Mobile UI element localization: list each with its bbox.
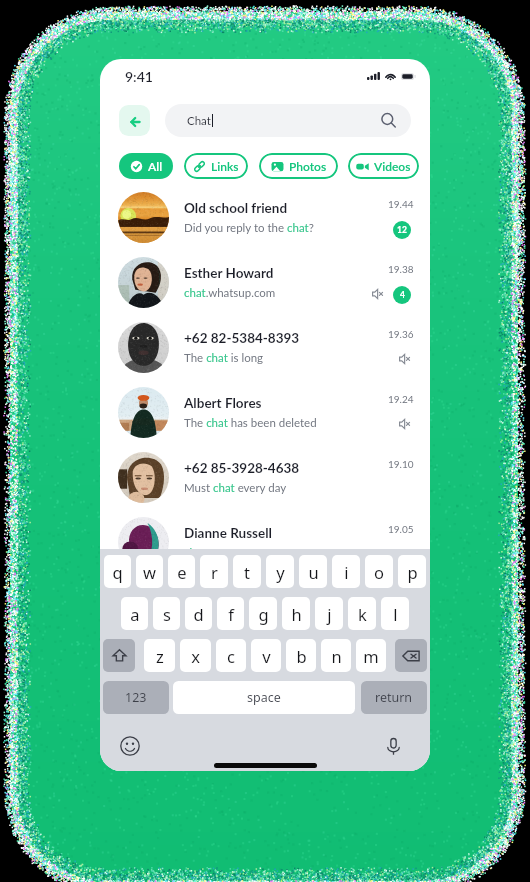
staticText: +62 85-3928-4638 bbox=[184, 460, 300, 476]
button[interactable]: Old school friend bbox=[100, 192, 430, 257]
staticText: r bbox=[211, 561, 218, 583]
staticText: o bbox=[374, 561, 384, 583]
staticText: Must chat every day bbox=[184, 481, 287, 495]
staticText: Photos bbox=[289, 159, 327, 173]
staticText: s bbox=[163, 603, 171, 625]
button[interactable]: x bbox=[180, 639, 211, 672]
button[interactable]: i bbox=[332, 555, 360, 588]
staticText: 123 bbox=[125, 689, 147, 706]
button[interactable]: Backspace bbox=[395, 639, 427, 672]
staticText: w bbox=[143, 561, 156, 583]
staticText: l bbox=[393, 603, 398, 625]
button[interactable]: Links bbox=[184, 153, 248, 179]
staticText: 19.38 bbox=[388, 263, 414, 275]
button[interactable]: q bbox=[104, 555, 131, 588]
staticText: m bbox=[363, 645, 379, 667]
other: Search bbox=[381, 113, 396, 128]
staticText: y bbox=[276, 561, 285, 583]
staticText: The chat has been deleted bbox=[184, 416, 317, 430]
staticText: e bbox=[177, 561, 187, 583]
staticText: Old school friend bbox=[184, 200, 288, 216]
staticText: z bbox=[156, 645, 164, 667]
staticText: 9:41 bbox=[125, 68, 153, 85]
button[interactable]: g bbox=[249, 597, 277, 630]
staticText: Esther Howard bbox=[184, 265, 274, 281]
button[interactable]: d bbox=[185, 597, 212, 630]
button[interactable]: Albert Flores bbox=[100, 387, 430, 452]
button[interactable]: a bbox=[121, 597, 148, 630]
staticText: a bbox=[130, 603, 140, 625]
button[interactable]: y bbox=[266, 555, 294, 588]
staticText: n bbox=[331, 645, 342, 667]
staticText: f bbox=[228, 603, 234, 625]
button[interactable]: space bbox=[173, 681, 355, 714]
staticText: chat.whatsup.com bbox=[184, 286, 276, 300]
staticText: j bbox=[327, 603, 332, 625]
staticText: i bbox=[344, 561, 349, 583]
staticText: space bbox=[247, 689, 281, 706]
button[interactable]: Dictate bbox=[380, 733, 406, 759]
staticText: 19.44 bbox=[388, 198, 414, 210]
staticText: p bbox=[407, 561, 418, 583]
button[interactable]: s bbox=[153, 597, 180, 630]
button[interactable]: Dianne Russell bbox=[100, 517, 430, 582]
button[interactable]: h bbox=[282, 597, 310, 630]
button[interactable]: j bbox=[315, 597, 343, 630]
button[interactable]: Esther Howard bbox=[100, 257, 430, 322]
button[interactable]: +62 85-3928-4638 bbox=[100, 452, 430, 517]
staticText: x bbox=[191, 645, 200, 667]
staticText: u bbox=[308, 561, 319, 583]
staticText: t bbox=[244, 561, 250, 583]
staticText: g bbox=[258, 603, 269, 625]
button[interactable]: n bbox=[321, 639, 351, 672]
staticText: Links bbox=[211, 159, 239, 173]
staticText: v bbox=[262, 645, 271, 667]
button[interactable]: return bbox=[361, 681, 427, 714]
staticText: Chat bbox=[187, 114, 211, 128]
staticText: k bbox=[358, 603, 367, 625]
button[interactable]: v bbox=[251, 639, 281, 672]
staticText: +62 82-5384-8393 bbox=[184, 330, 300, 346]
staticText: The chat is long bbox=[184, 351, 264, 365]
button[interactable]: z bbox=[144, 639, 175, 672]
staticText: All bbox=[148, 159, 163, 173]
staticText: 4 bbox=[400, 290, 405, 300]
button[interactable]: All bbox=[119, 153, 173, 179]
button[interactable]: b bbox=[286, 639, 316, 672]
button[interactable]: Back bbox=[119, 105, 150, 136]
staticText: chat bbox=[184, 546, 206, 560]
button[interactable]: Emoji bbox=[117, 733, 143, 759]
button[interactable]: t bbox=[233, 555, 261, 588]
staticText: 19.36 bbox=[388, 328, 414, 340]
staticText: 19.10 bbox=[388, 458, 414, 470]
staticText: c bbox=[227, 645, 235, 667]
button[interactable]: w bbox=[136, 555, 163, 588]
staticText: q bbox=[112, 561, 123, 583]
button[interactable]: Videos bbox=[348, 153, 419, 179]
button[interactable]: Shift bbox=[103, 639, 135, 672]
button[interactable]: Photos bbox=[259, 153, 338, 179]
staticText: Videos bbox=[374, 159, 411, 173]
button[interactable]: c bbox=[216, 639, 246, 672]
staticText: h bbox=[291, 603, 302, 625]
staticText: Albert Flores bbox=[184, 395, 262, 411]
button[interactable]: m bbox=[356, 639, 386, 672]
button[interactable]: k bbox=[348, 597, 376, 630]
other: Back bbox=[130, 117, 140, 127]
staticText: d bbox=[193, 603, 204, 625]
button[interactable]: o bbox=[365, 555, 393, 588]
button[interactable]: 123 bbox=[103, 681, 169, 714]
button[interactable]: Chat bbox=[165, 104, 411, 137]
staticText: 12 bbox=[397, 225, 407, 235]
staticText: Did you reply to the chat? bbox=[184, 221, 314, 235]
staticText: b bbox=[296, 645, 307, 667]
button[interactable]: u bbox=[299, 555, 327, 588]
button[interactable]: f bbox=[217, 597, 244, 630]
button[interactable]: r bbox=[200, 555, 228, 588]
button[interactable]: +62 82-5384-8393 bbox=[100, 322, 430, 387]
staticText: 19.24 bbox=[388, 393, 414, 405]
button[interactable]: p bbox=[398, 555, 426, 588]
staticText: return bbox=[375, 689, 413, 706]
button[interactable]: e bbox=[168, 555, 195, 588]
button[interactable]: l bbox=[381, 597, 409, 630]
